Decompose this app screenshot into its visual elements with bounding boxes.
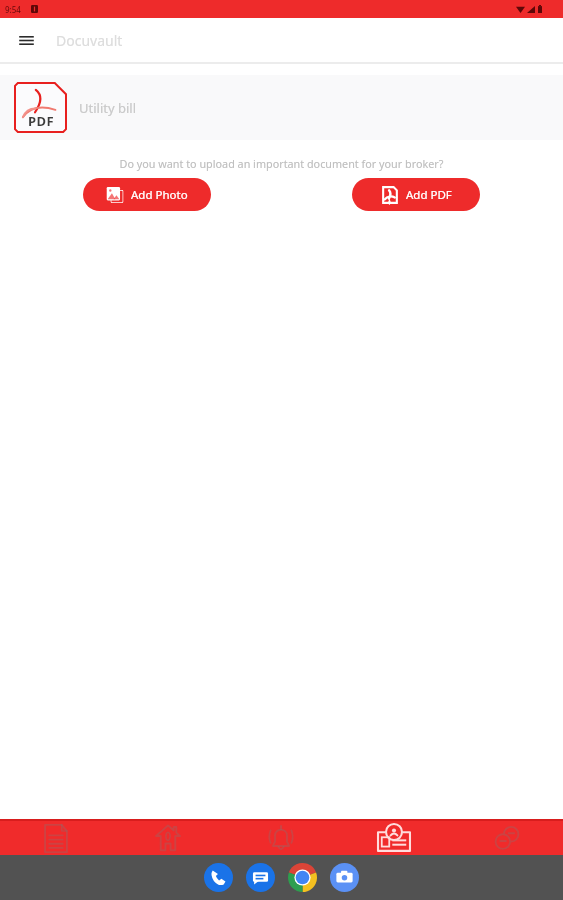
button[interactable]: Notifications bbox=[224, 821, 337, 855]
button[interactable]: Home bbox=[112, 821, 224, 855]
button[interactable]: Messages bbox=[246, 863, 275, 892]
button[interactable]: Add Photo bbox=[83, 178, 211, 211]
staticText: Docuvault bbox=[56, 31, 123, 50]
staticText: Do you want to upload an important docum… bbox=[0, 156, 563, 171]
button[interactable]: Camera bbox=[330, 863, 359, 892]
button[interactable]: Phone bbox=[204, 863, 233, 892]
staticText: 9:54 bbox=[5, 4, 21, 15]
button[interactable]: Chat bbox=[450, 821, 563, 855]
staticText: Add PDF bbox=[406, 187, 452, 203]
staticText: Add Photo bbox=[131, 187, 188, 203]
button[interactable]: Profile card bbox=[337, 821, 450, 855]
button[interactable]: Chrome bbox=[288, 863, 317, 892]
button[interactable]: PDF bbox=[0, 75, 563, 140]
button[interactable]: Documents bbox=[0, 821, 112, 855]
button[interactable]: Open navigation menu bbox=[0, 18, 52, 62]
staticText: PDF bbox=[28, 112, 54, 130]
button[interactable]: Add PDF bbox=[352, 178, 480, 211]
staticText: Utility bill bbox=[79, 99, 137, 117]
